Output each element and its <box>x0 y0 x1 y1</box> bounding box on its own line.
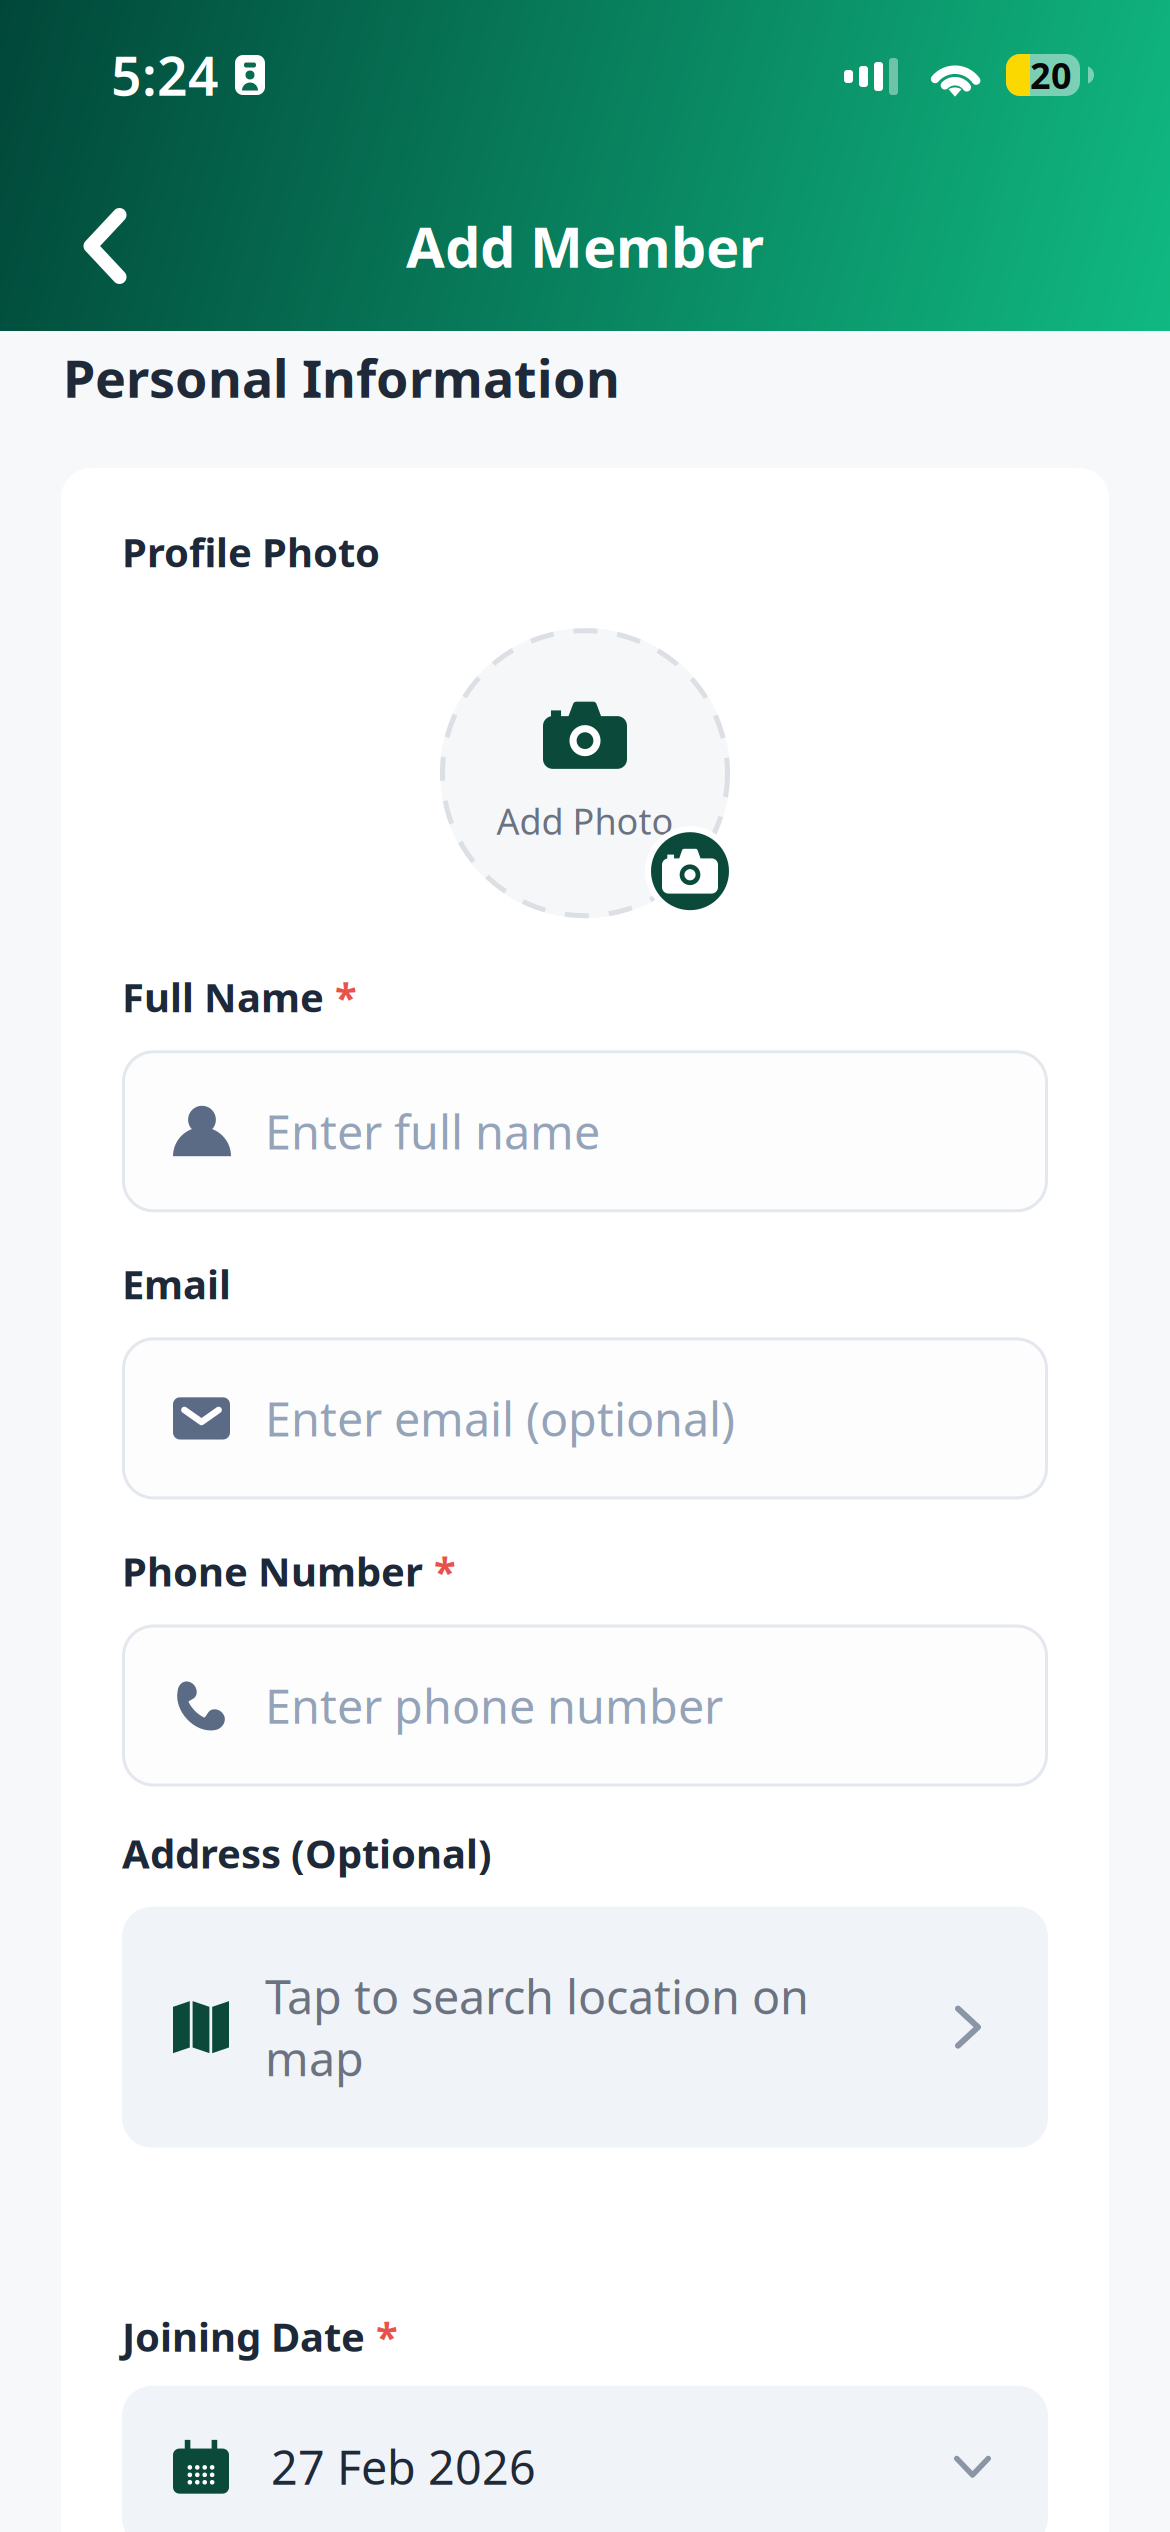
staticText: Add Photo <box>496 797 673 845</box>
staticText: Email <box>122 1257 231 1310</box>
button[interactable]: 27 Feb 2026 <box>122 2386 1048 2532</box>
staticText: Personal Information <box>63 343 620 412</box>
staticText: Enter full name <box>265 1100 600 1162</box>
staticText: Enter email (optional) <box>265 1387 735 1449</box>
staticText: Full Name <box>122 970 324 1023</box>
button[interactable]: Tap to search location on map <box>122 1907 1048 2148</box>
staticText: Profile Photo <box>122 525 380 578</box>
staticText: Tap to search location on map <box>265 1965 809 2089</box>
staticText: 27 Feb 2026 <box>271 2436 536 2498</box>
staticText: * <box>376 2310 398 2363</box>
staticText: Phone Number <box>122 1544 423 1597</box>
staticText: 5:24 <box>111 40 219 110</box>
button[interactable]: Back <box>42 194 168 298</box>
staticText: * <box>335 970 357 1023</box>
staticText: Address (Optional) <box>122 1826 492 1880</box>
staticText: 20 <box>1030 51 1072 99</box>
staticText: Joining Date <box>122 2310 365 2363</box>
staticText: * <box>434 1544 456 1597</box>
staticText: Add Member <box>406 209 764 283</box>
staticText: Enter phone number <box>265 1674 723 1736</box>
button[interactable]: Add Photo <box>440 628 730 918</box>
